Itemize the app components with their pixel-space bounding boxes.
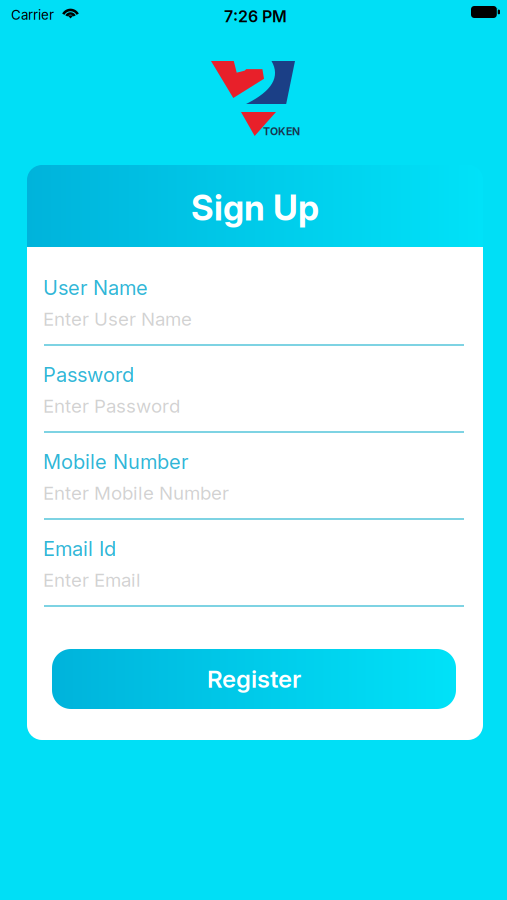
staticText: Carrier [11, 7, 54, 23]
staticText: User Name [43, 276, 148, 300]
staticText: Enter Mobile Number [43, 482, 229, 504]
staticText: Mobile Number [43, 450, 188, 474]
staticText: Sign Up [191, 188, 319, 228]
staticText: 7:26 PM [224, 7, 287, 26]
staticText: TOKEN [263, 125, 300, 138]
staticText: Enter User Name [43, 308, 192, 330]
staticText: Password [43, 363, 134, 387]
button[interactable]: Register [52, 649, 456, 709]
staticText: Enter Email [43, 569, 141, 591]
staticText: Email Id [43, 537, 116, 561]
staticText: Register [207, 665, 301, 693]
staticText: Enter Password [43, 395, 180, 417]
